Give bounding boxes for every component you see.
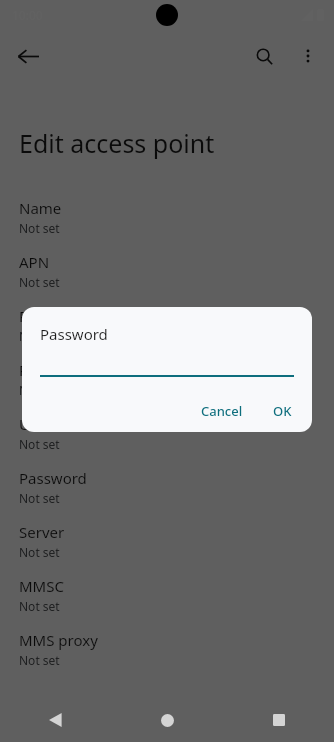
button[interactable]: Port [0,352,334,406]
button[interactable]: Server [0,514,334,568]
button[interactable]: Proxy [0,298,334,352]
staticText: Not set [19,652,60,668]
staticText: Server [19,522,65,542]
staticText: Port [19,360,49,380]
button[interactable]: Username [0,406,334,460]
button[interactable]: MMSC [0,568,334,622]
button[interactable]: OK [265,396,300,426]
staticText: MMS proxy [19,630,98,650]
staticText: Not set [19,490,60,506]
button[interactable]: Back [0,698,112,742]
staticText: Edit access point [19,126,215,160]
button[interactable]: Password [0,460,334,514]
staticText: Not set [19,328,60,344]
button[interactable]: Name [0,190,334,244]
staticText: Name [19,198,62,218]
button[interactable]: Back [6,34,50,78]
button[interactable]: MMS proxy [0,622,334,676]
staticText: Password [19,468,87,488]
button[interactable]: Cancel [193,396,251,426]
button[interactable]: Recent apps [223,698,334,742]
staticText: Cancel [201,402,243,420]
staticText: MMSC [19,576,64,596]
button[interactable]: Home [112,698,223,742]
button[interactable]: Search [242,34,286,78]
staticText: Username [19,414,92,434]
button[interactable]: APN [0,244,334,298]
staticText: Not set [19,274,60,290]
staticText: Not set [19,544,60,560]
staticText: Not set [19,220,60,236]
staticText: Not set [19,382,60,398]
staticText: APN [19,252,50,272]
staticText: Proxy [19,306,59,326]
staticText: Password [40,324,108,344]
staticText: OK [273,402,292,420]
button[interactable]: More options [286,34,330,78]
staticText: Not set [19,436,60,452]
staticText: Not set [19,598,60,614]
